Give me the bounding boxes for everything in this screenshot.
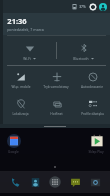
button[interactable]: Tryb samolotowy	[38, 66, 74, 93]
button[interactable]: Phone	[6, 173, 24, 191]
button[interactable]: Sklep Play	[82, 130, 110, 154]
button[interactable]: Wiąc. mobile	[3, 66, 38, 93]
button[interactable]: Camera	[86, 173, 104, 191]
staticText: Wi-Fi	[23, 56, 31, 60]
button[interactable]: All apps	[46, 173, 64, 191]
staticText: Lokalizacja	[12, 112, 29, 116]
button[interactable]: Bluetooth	[57, 36, 110, 65]
button[interactable]: Hotfinet	[38, 93, 74, 120]
staticText: Sklep Play	[88, 150, 104, 154]
staticText: Bluetooth	[73, 56, 89, 60]
button[interactable]: Settings	[89, 3, 96, 10]
button[interactable]: User	[99, 3, 107, 11]
staticText: Tryb samolotowy	[43, 85, 69, 89]
staticText: 21:36	[7, 16, 27, 26]
button[interactable]: Contacts	[26, 173, 44, 191]
button[interactable]: Google	[0, 130, 27, 154]
staticText: Wiąc. mobile	[11, 85, 31, 89]
button[interactable]: Messages	[66, 173, 84, 191]
staticText: poniedziałek, 7 marca	[7, 27, 44, 32]
staticText: 37%	[79, 4, 86, 9]
button[interactable]: Lokalizacja	[3, 93, 38, 120]
staticText: Google	[8, 150, 19, 154]
button[interactable]: Autoobracanie	[74, 66, 110, 93]
staticText: Hotfinet	[50, 112, 63, 116]
button[interactable]: Wi-Fi	[3, 36, 56, 65]
staticText: Autoobracanie	[81, 85, 103, 89]
button[interactable]: Profile dźwięku	[74, 93, 110, 120]
staticText: Profile dźwięku	[81, 112, 104, 116]
